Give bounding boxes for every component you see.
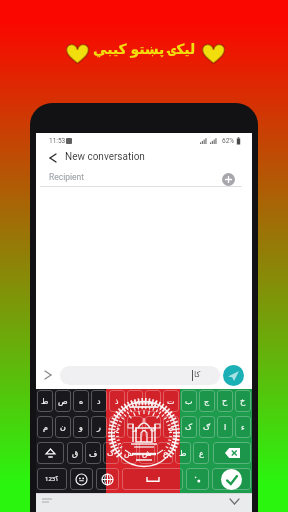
staticText: غ xyxy=(163,449,168,458)
button[interactable] xyxy=(230,499,239,504)
button[interactable]: ب xyxy=(181,390,197,412)
staticText: Recipient xyxy=(49,172,85,182)
button[interactable]: ؟123 xyxy=(37,468,67,490)
staticText: خ xyxy=(240,397,246,406)
staticText: ا xyxy=(224,423,227,432)
staticText: پ xyxy=(149,397,157,406)
button[interactable] xyxy=(222,173,235,186)
staticText: ز xyxy=(115,423,119,432)
staticText: ن xyxy=(60,423,66,432)
button[interactable]: ج xyxy=(199,390,215,412)
staticText: ګ xyxy=(203,423,211,432)
button[interactable]: ز xyxy=(109,416,125,438)
staticText: کا xyxy=(194,370,201,379)
staticText: ه xyxy=(79,397,84,406)
button[interactable]: ت xyxy=(163,390,179,412)
staticText: ء xyxy=(241,423,245,432)
button[interactable] xyxy=(213,442,251,464)
button[interactable] xyxy=(223,365,244,386)
button[interactable] xyxy=(37,442,64,464)
button[interactable]: ش xyxy=(139,442,155,464)
staticText: ق xyxy=(72,449,79,458)
button[interactable]: ط xyxy=(175,442,191,464)
button[interactable]: ن xyxy=(55,416,71,438)
button[interactable]: و xyxy=(73,416,89,438)
staticText: ح xyxy=(222,397,228,406)
button[interactable]: ا xyxy=(217,416,233,438)
staticText: 62% xyxy=(222,137,235,145)
staticText: ف xyxy=(89,449,98,458)
staticText: ې xyxy=(168,423,175,432)
button[interactable]: ر xyxy=(91,416,107,438)
button[interactable]: ی xyxy=(145,416,161,438)
button[interactable] xyxy=(212,468,251,490)
button[interactable]: ع xyxy=(193,442,209,464)
staticText: ب xyxy=(185,397,193,406)
button[interactable]: خ xyxy=(235,390,251,412)
button[interactable]: ړ xyxy=(127,416,143,438)
staticText: ک xyxy=(185,423,193,432)
staticText: ع xyxy=(199,449,204,458)
staticText: ط xyxy=(179,449,187,458)
staticText: ط xyxy=(41,397,49,406)
button[interactable]: ګ xyxy=(199,416,215,438)
staticText: ليکۍ پښتو کيبي xyxy=(93,39,196,58)
button[interactable]: ح xyxy=(217,390,233,412)
staticText: د xyxy=(97,397,101,406)
button[interactable]: New conversation xyxy=(65,151,145,163)
button[interactable]: پ xyxy=(145,390,161,412)
button[interactable]: د xyxy=(91,390,107,412)
button[interactable]: م xyxy=(37,416,53,438)
button[interactable]: ط xyxy=(37,390,53,412)
staticText: و xyxy=(79,423,83,432)
staticText: 11:53 xyxy=(49,137,66,145)
staticText: ر xyxy=(97,423,101,432)
staticText: ی xyxy=(150,423,157,432)
button[interactable]: ء xyxy=(235,416,251,438)
button[interactable]: ذ xyxy=(109,390,125,412)
staticText: ث xyxy=(131,397,139,406)
button[interactable] xyxy=(186,468,209,490)
staticText: ؟123 xyxy=(45,475,59,483)
button[interactable]: غ xyxy=(157,442,173,464)
button[interactable]: ث xyxy=(127,390,143,412)
button[interactable]: ک xyxy=(181,416,197,438)
button[interactable] xyxy=(70,468,93,490)
staticText: ص xyxy=(58,397,68,406)
button[interactable]: ص xyxy=(55,390,71,412)
staticText: م xyxy=(43,423,48,432)
button[interactable] xyxy=(50,154,56,162)
staticText: س xyxy=(124,449,134,458)
button[interactable]: ق xyxy=(67,442,83,464)
button[interactable] xyxy=(122,468,183,490)
button[interactable]: ګ xyxy=(103,442,119,464)
staticText: ج xyxy=(204,397,210,406)
button[interactable] xyxy=(45,371,51,379)
staticText: ش xyxy=(142,449,152,458)
staticText: ت xyxy=(167,397,175,406)
staticText: ذ xyxy=(115,397,119,406)
button[interactable] xyxy=(96,468,119,490)
staticText: ګ xyxy=(107,449,115,458)
button[interactable]: کا xyxy=(60,366,220,385)
button[interactable]: ف xyxy=(85,442,101,464)
button[interactable]: س xyxy=(121,442,137,464)
button[interactable]: ه xyxy=(73,390,89,412)
staticText: ړ xyxy=(133,423,137,432)
button[interactable]: ې xyxy=(163,416,179,438)
